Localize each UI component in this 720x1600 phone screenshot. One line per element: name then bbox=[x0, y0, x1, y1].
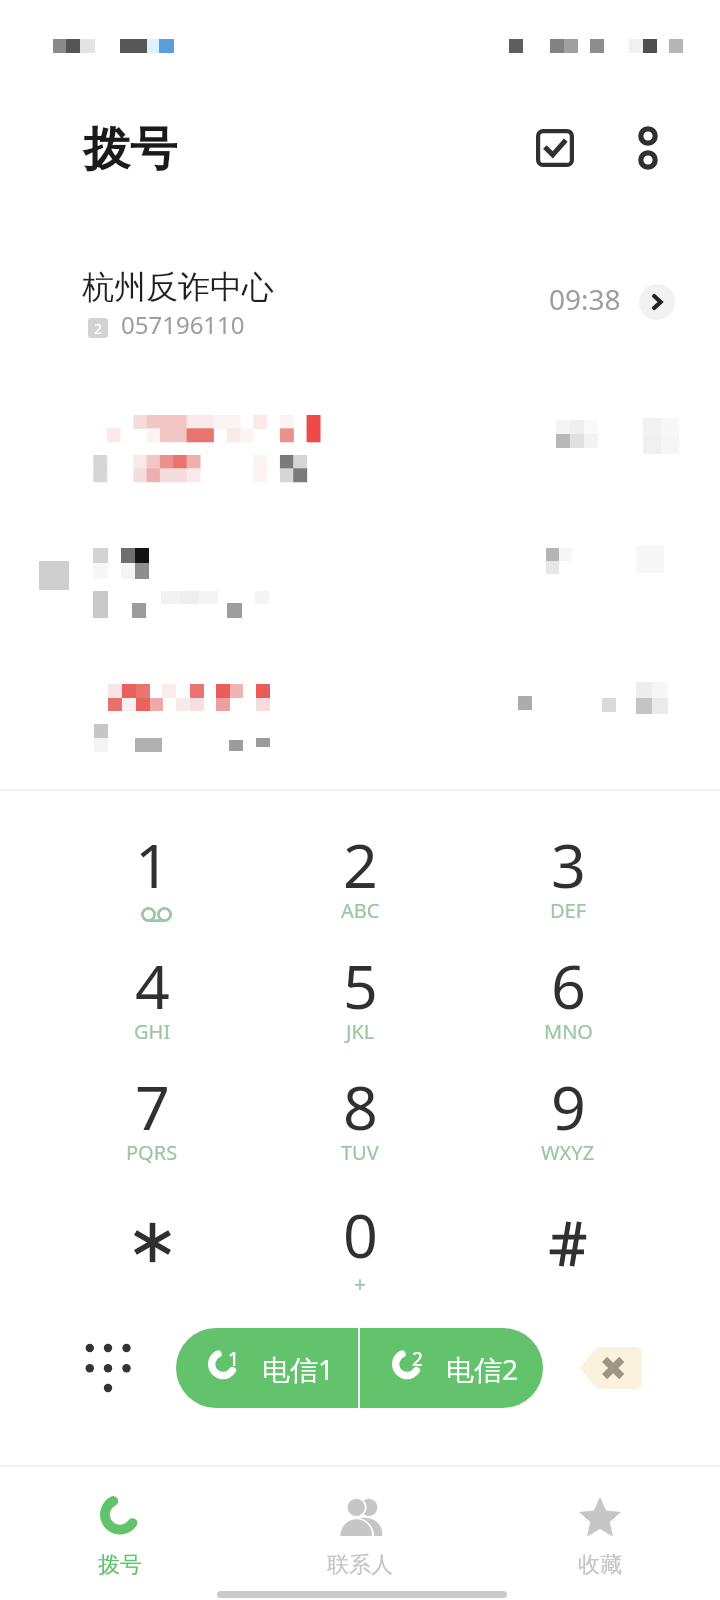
staticText: 联系人 bbox=[327, 1551, 393, 1579]
button[interactable]: Keypad bbox=[78, 1328, 138, 1408]
button[interactable]: 拨号 bbox=[0, 1495, 240, 1599]
staticText: 3 bbox=[551, 823, 586, 906]
staticText: 1 bbox=[228, 1346, 239, 1372]
button[interactable] bbox=[0, 372, 720, 503]
button[interactable]: 5 bbox=[256, 933, 464, 1051]
button[interactable]: 8 bbox=[256, 1054, 464, 1172]
button[interactable]: Backspace bbox=[578, 1346, 642, 1390]
staticText: 9 bbox=[551, 1065, 586, 1148]
staticText: 杭州反诈中心 bbox=[82, 267, 274, 307]
staticText: 电信1 bbox=[262, 1350, 335, 1388]
staticText: 2 bbox=[412, 1346, 423, 1372]
staticText: 电信2 bbox=[446, 1350, 519, 1388]
button[interactable]: 0 bbox=[256, 1182, 464, 1300]
button[interactable]: 7 bbox=[48, 1054, 256, 1172]
staticText: WXYZ bbox=[541, 1139, 595, 1166]
button[interactable]: 2 bbox=[256, 812, 464, 930]
staticText: 2 bbox=[343, 823, 378, 906]
staticText: ABC bbox=[341, 897, 380, 924]
staticText: 09:38 bbox=[549, 280, 621, 318]
staticText: 拨号 bbox=[98, 1551, 142, 1579]
staticText: 5 bbox=[343, 944, 378, 1027]
staticText: 4 bbox=[135, 944, 170, 1027]
button[interactable]: Call details bbox=[639, 284, 675, 320]
button[interactable]: 杭州反诈中心 bbox=[0, 240, 720, 362]
button[interactable] bbox=[0, 634, 720, 765]
button[interactable] bbox=[0, 503, 720, 634]
staticText: 6 bbox=[551, 944, 586, 1027]
button[interactable]: 3 bbox=[464, 812, 672, 930]
button[interactable]: 2 bbox=[360, 1328, 543, 1408]
button[interactable]: Multi select bbox=[527, 120, 583, 176]
button[interactable]: 1 bbox=[176, 1328, 358, 1408]
staticText: 0 bbox=[343, 1193, 378, 1276]
button[interactable] bbox=[464, 1182, 672, 1300]
button[interactable]: More options bbox=[620, 120, 676, 176]
staticText: + bbox=[354, 1270, 367, 1299]
staticText: 8 bbox=[343, 1065, 378, 1148]
button[interactable]: 4 bbox=[48, 933, 256, 1051]
staticText: 收藏 bbox=[578, 1551, 622, 1579]
staticText: 1 bbox=[135, 823, 170, 906]
staticText: TUV bbox=[341, 1139, 379, 1166]
staticText: 2 bbox=[94, 319, 103, 338]
staticText: 拨号 bbox=[83, 120, 177, 179]
button[interactable]: 9 bbox=[464, 1054, 672, 1172]
button[interactable]: 1 bbox=[48, 812, 256, 930]
staticText: PQRS bbox=[126, 1139, 178, 1166]
button[interactable]: 6 bbox=[464, 933, 672, 1051]
staticText: DEF bbox=[550, 897, 587, 924]
button[interactable]: 联系人 bbox=[240, 1495, 480, 1599]
button[interactable]: 收藏 bbox=[480, 1495, 720, 1599]
staticText: JKL bbox=[346, 1018, 375, 1045]
button[interactable] bbox=[48, 1182, 256, 1300]
staticText: 057196110 bbox=[121, 308, 245, 341]
staticText: GHI bbox=[134, 1018, 171, 1045]
staticText: MNO bbox=[544, 1018, 593, 1045]
staticText: 7 bbox=[135, 1065, 170, 1148]
